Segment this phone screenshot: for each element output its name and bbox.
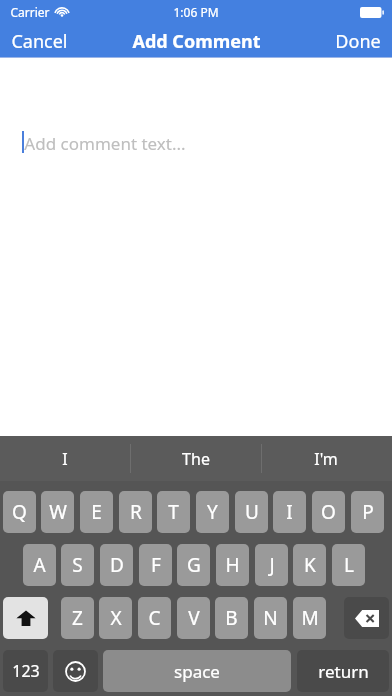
button[interactable]: S [61, 544, 94, 586]
staticText: Y [207, 499, 218, 525]
staticText: H [225, 552, 240, 578]
button[interactable]: V [177, 597, 210, 639]
button[interactable]: space [103, 650, 291, 692]
staticText: 123 [12, 660, 40, 682]
staticText: J [269, 552, 275, 578]
button[interactable]: H [216, 544, 249, 586]
button[interactable]: W [41, 491, 74, 533]
staticText: R [130, 499, 142, 525]
staticText: space [174, 660, 220, 683]
button[interactable]: Emoji [53, 650, 98, 692]
staticText: X [110, 605, 122, 631]
staticText: D [110, 552, 124, 578]
staticText: Add Comment [132, 29, 261, 54]
button[interactable]: B [215, 597, 248, 639]
button[interactable]: F [139, 544, 172, 586]
staticText: M [301, 605, 319, 631]
staticText: G [187, 552, 201, 578]
button[interactable]: G [177, 544, 210, 586]
button[interactable]: P [351, 491, 384, 533]
button[interactable]: X [99, 597, 132, 639]
button[interactable]: N [254, 597, 287, 639]
button[interactable]: Cancel [6, 26, 73, 57]
button[interactable]: R [119, 491, 152, 533]
button[interactable]: I'm [261, 436, 391, 481]
button[interactable]: M [293, 597, 326, 639]
staticText: W [49, 499, 67, 525]
staticText: O [321, 499, 336, 525]
button[interactable]: C [138, 597, 171, 639]
staticText: B [225, 605, 238, 631]
button[interactable]: 123 [3, 650, 48, 692]
staticText: K [304, 552, 316, 578]
staticText: N [263, 605, 278, 631]
staticText: Carrier [10, 4, 50, 20]
staticText: E [91, 499, 102, 525]
button[interactable]: A [23, 544, 56, 586]
staticText: 1:06 PM [173, 4, 219, 20]
button[interactable]: Y [196, 491, 229, 533]
button[interactable]: The [131, 436, 261, 481]
button[interactable]: Z [61, 597, 94, 639]
button[interactable]: Backspace [344, 597, 389, 639]
staticText: T [168, 499, 179, 525]
staticText: L [344, 552, 354, 578]
staticText: S [72, 552, 83, 578]
staticText: return [318, 660, 369, 683]
staticText: F [151, 552, 161, 578]
button[interactable]: Shift [3, 597, 48, 639]
button[interactable]: Add comment text... [0, 58, 392, 428]
staticText: I'm [314, 448, 338, 470]
staticText: I [62, 448, 68, 470]
staticText: P [362, 499, 374, 525]
staticText: Q [12, 499, 27, 525]
button[interactable]: T [157, 491, 190, 533]
button[interactable]: D [100, 544, 133, 586]
staticText: U [245, 499, 259, 525]
button[interactable]: L [332, 544, 365, 586]
button[interactable]: return [297, 650, 389, 692]
button[interactable]: E [80, 491, 113, 533]
button[interactable]: I [273, 491, 306, 533]
button[interactable]: O [312, 491, 345, 533]
button[interactable]: J [255, 544, 288, 586]
staticText: V [188, 605, 200, 631]
staticText: A [33, 552, 46, 578]
staticText: I [286, 499, 293, 525]
staticText: Done [335, 29, 381, 54]
staticText: Cancel [11, 29, 68, 54]
button[interactable]: Done [330, 26, 386, 57]
button[interactable]: U [235, 491, 268, 533]
staticText: C [148, 605, 161, 631]
button[interactable]: Q [3, 491, 36, 533]
staticText: Z [72, 605, 83, 631]
button[interactable]: K [293, 544, 326, 586]
staticText: Add comment text... [24, 132, 186, 155]
button[interactable]: I [0, 436, 130, 481]
staticText: The [182, 448, 210, 470]
